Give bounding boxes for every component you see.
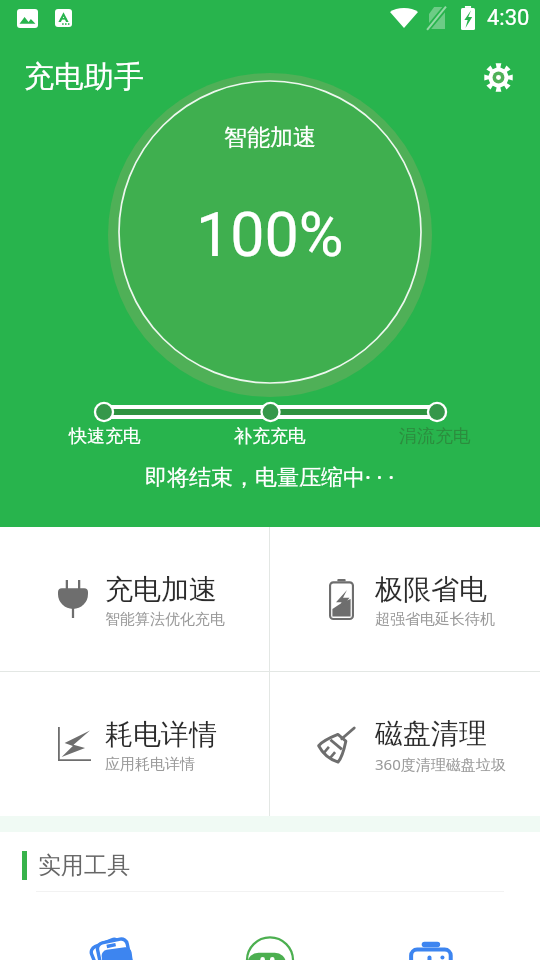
- staticText: 极限省电: [375, 572, 487, 607]
- staticText: 应用耗电详情: [105, 755, 195, 774]
- button[interactable]: Assistant: [234, 892, 306, 960]
- staticText: 涓流充电: [399, 425, 471, 448]
- staticText: 充电加速: [105, 572, 217, 607]
- staticText: 智能加速: [224, 123, 316, 152]
- staticText: 耗电详情: [105, 717, 217, 752]
- staticText: 4:30: [487, 5, 530, 31]
- staticText: 实用工具: [38, 851, 130, 880]
- button[interactable]: App manager: [81, 892, 153, 960]
- staticText: 磁盘清理: [375, 716, 487, 751]
- button[interactable]: 磁盘清理: [270, 672, 540, 816]
- button[interactable]: 耗电详情: [0, 672, 269, 816]
- staticText: 即将结束，电量压缩中· · ·: [145, 461, 395, 491]
- staticText: 360度清理磁盘垃圾: [375, 754, 506, 774]
- button[interactable]: Settings: [476, 55, 520, 99]
- staticText: 智能算法优化充电: [105, 610, 225, 629]
- staticText: 充电助手: [24, 58, 144, 96]
- button[interactable]: Toolbox: [387, 892, 459, 960]
- staticText: 100%: [196, 199, 344, 270]
- button[interactable]: 极限省电: [270, 527, 540, 671]
- staticText: 超强省电延长待机: [375, 610, 495, 629]
- button[interactable]: 充电加速: [0, 527, 269, 671]
- staticText: 快速充电: [69, 425, 141, 448]
- staticText: 补充充电: [234, 425, 306, 448]
